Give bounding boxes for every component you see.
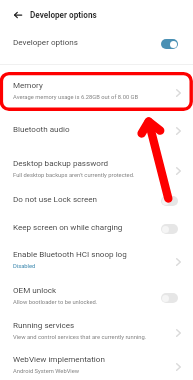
button[interactable]: Memory [0, 72, 193, 108]
staticText: Allow bootloader to be unlocked. [13, 299, 98, 306]
staticText: Enable Bluetooth HCI snoop log [13, 249, 127, 258]
staticText: Developer options [13, 37, 78, 46]
button[interactable]: Do not use Lock screen [0, 185, 193, 211]
staticText: Disabled [13, 263, 36, 270]
button[interactable]: Running services [0, 312, 193, 348]
staticText: Full desktop backups aren't currently pr… [13, 172, 135, 179]
staticText: Desktop backup password [13, 158, 109, 167]
button[interactable]: Desktop backup password [0, 150, 193, 186]
staticText: Memory [13, 80, 43, 89]
button[interactable]: Back [6, 7, 22, 23]
button[interactable]: OEM unlock [0, 277, 193, 313]
button[interactable]: Keep screen on while charging [0, 213, 193, 239]
button[interactable]: Developer options [0, 28, 193, 54]
staticText: OEM unlock [13, 285, 57, 294]
staticText: Average memory usage is 6.28GB out of 8.… [13, 94, 139, 101]
staticText: Android System WebView [13, 368, 80, 375]
button[interactable]: WebView implementation [0, 346, 193, 380]
staticText: WebView implementation [13, 354, 105, 363]
staticText: Keep screen on while charging [13, 222, 123, 231]
button[interactable]: Enable Bluetooth HCI snoop log [0, 241, 193, 277]
staticText: Running services [13, 320, 75, 329]
staticText: Bluetooth audio [13, 124, 70, 133]
button[interactable]: Bluetooth audio [0, 115, 193, 141]
staticText: Do not use Lock screen [13, 194, 98, 203]
staticText: Developer options [30, 10, 97, 20]
staticText: View and control services that are curre… [13, 334, 147, 341]
